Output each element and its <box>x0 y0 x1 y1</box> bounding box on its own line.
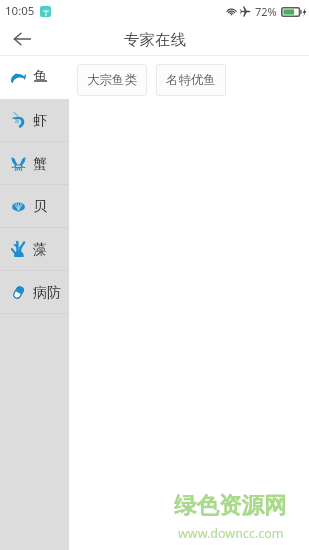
staticText: 72% <box>255 4 277 19</box>
staticText: 绿色资源网 <box>174 491 287 519</box>
staticText: 10:05 <box>5 3 35 19</box>
staticText: 蟹 <box>33 155 47 173</box>
staticText: 藻 <box>33 241 47 259</box>
staticText: 大宗鱼类 <box>87 72 137 88</box>
staticText: 专家在线 <box>124 30 186 50</box>
button[interactable]: 大宗鱼类 <box>77 64 147 96</box>
button[interactable]: 病防 <box>0 271 69 314</box>
staticText: 虾 <box>33 112 47 130</box>
staticText: 名特优鱼 <box>166 72 216 88</box>
button[interactable]: 虾 <box>0 99 69 142</box>
button[interactable]: 鱼 <box>0 56 69 99</box>
staticText: 贝 <box>33 198 47 216</box>
button[interactable]: 贝 <box>0 185 69 228</box>
staticText: 鱼 <box>33 68 47 86</box>
staticText: www.downcc.com <box>178 525 284 542</box>
button[interactable]: 藻 <box>0 228 69 271</box>
button[interactable]: 名特优鱼 <box>156 64 226 96</box>
button[interactable]: 蟹 <box>0 142 69 185</box>
staticText: 病防 <box>33 284 61 302</box>
button[interactable]: Back <box>7 24 37 54</box>
